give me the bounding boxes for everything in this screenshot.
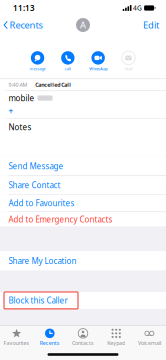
staticText: Block this Caller — [9, 295, 68, 306]
button[interactable]: Send Message — [0, 157, 166, 175]
staticText: mail — [124, 66, 132, 71]
button[interactable]: Voicemail — [133, 326, 166, 349]
staticText: Keypad — [107, 339, 125, 346]
button[interactable]: Share Contact — [0, 176, 166, 194]
staticText: Favourites — [4, 339, 30, 346]
button[interactable]: Favourites — [0, 326, 33, 349]
staticText: WhatsApp — [89, 66, 107, 71]
button[interactable]: Recents — [33, 326, 66, 349]
button[interactable]: call — [53, 51, 83, 71]
button[interactable]: message — [22, 51, 53, 71]
staticText: call — [65, 66, 71, 71]
staticText: + — [9, 106, 14, 116]
staticText: message — [29, 66, 45, 71]
button[interactable]: Keypad — [100, 326, 133, 349]
staticText: Recents — [40, 339, 60, 346]
staticText: mobile — [9, 93, 35, 103]
staticText: Voicemail — [138, 339, 161, 346]
staticText: Share Contact — [9, 180, 61, 190]
staticText: Send Message — [9, 161, 64, 171]
staticText: A — [80, 19, 86, 31]
button[interactable]: WhatsApp — [83, 51, 113, 71]
staticText: Add to Emergency Contacts — [9, 214, 113, 225]
staticText: 9:40 AM — [9, 81, 28, 88]
staticText: Cancelled Call — [35, 81, 71, 88]
button[interactable]: Contact photo — [76, 18, 90, 32]
button[interactable]: Share My Location — [0, 251, 166, 270]
button[interactable]: Add to Emergency Contacts — [0, 212, 166, 227]
button[interactable]: Recents — [0, 16, 42, 34]
staticText: Notes — [9, 122, 32, 132]
staticText: Contacts — [72, 339, 94, 346]
staticText: Add to Favourites — [9, 198, 75, 208]
staticText: 4G — [133, 4, 142, 12]
staticText: Edit — [143, 19, 159, 31]
button[interactable]: mobile — [0, 91, 166, 118]
button[interactable]: Notes — [0, 119, 166, 157]
button[interactable]: Edit — [143, 16, 166, 34]
button[interactable]: mail — [113, 51, 144, 71]
staticText: Share My Location — [9, 255, 77, 266]
staticText: 11:13 — [13, 3, 35, 13]
button[interactable]: Add to Favourites — [0, 195, 166, 211]
staticText: Recents — [9, 19, 42, 31]
button[interactable]: Contacts — [66, 326, 100, 349]
button[interactable]: Block this Caller — [0, 292, 166, 309]
